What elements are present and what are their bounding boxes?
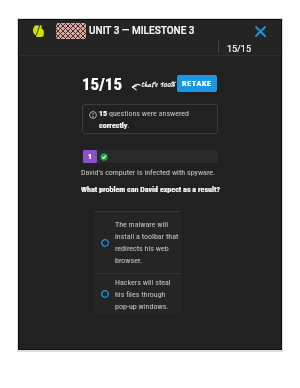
staticText: David's computer is infected with spywar… <box>81 168 216 177</box>
staticText: 15 questions were answered correctly. <box>99 109 190 130</box>
staticText: RETAKE <box>182 79 212 88</box>
staticText: The malware will install a toolbar that … <box>115 220 181 265</box>
staticText: 15/15 <box>82 74 123 94</box>
staticText: 1 <box>88 152 93 161</box>
button[interactable]: RETAKE <box>177 75 217 92</box>
staticText: What problem can David expect as a resul… <box>81 185 220 194</box>
staticText: UNIT 3 — MILESTONE 3 <box>89 25 195 37</box>
button[interactable]: The malware will install a toolbar that … <box>94 212 181 273</box>
button[interactable]: Khan Academy home <box>29 22 47 40</box>
staticText: Hackers will steal his files through pop… <box>115 278 181 311</box>
staticText: 15/15 <box>227 44 251 55</box>
button[interactable]: Hackers will steal his files through pop… <box>94 274 181 314</box>
button[interactable]: Close <box>250 21 270 41</box>
staticText: that's 100% <box>141 79 175 89</box>
